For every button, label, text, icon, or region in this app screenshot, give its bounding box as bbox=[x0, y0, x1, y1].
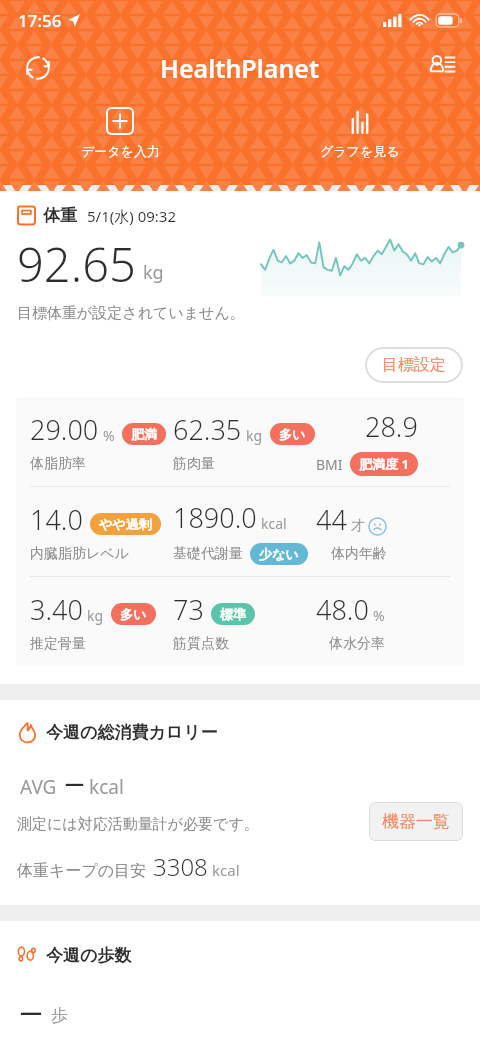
staticText: — bbox=[20, 996, 43, 1026]
staticText: 体重キープの目安 bbox=[17, 861, 147, 881]
staticText: 29.00 bbox=[30, 411, 99, 448]
staticText: 肥満度 1 bbox=[359, 455, 409, 473]
staticText: 目標設定 bbox=[382, 355, 446, 375]
staticText: kcal bbox=[261, 514, 287, 533]
staticText: 内臓脂肪レベル bbox=[30, 545, 129, 563]
staticText: 48.0 bbox=[316, 591, 369, 628]
staticText: 肥満 bbox=[131, 426, 157, 442]
staticText: kg bbox=[143, 260, 164, 285]
staticText: 今週の歩数 bbox=[46, 945, 132, 966]
staticText: 測定には対応活動量計が必要です。 bbox=[17, 815, 259, 834]
staticText: 92.65 bbox=[17, 232, 136, 296]
staticText: 才 bbox=[351, 517, 365, 535]
staticText: 体重 bbox=[43, 205, 77, 226]
staticText: 筋肉量 bbox=[173, 455, 215, 473]
staticText: 17:56 bbox=[18, 9, 62, 32]
staticText: 推定骨量 bbox=[30, 635, 86, 653]
button[interactable]: Refresh bbox=[16, 46, 60, 90]
staticText: % bbox=[103, 426, 115, 445]
staticText: 多い bbox=[279, 426, 306, 442]
staticText: kg bbox=[87, 606, 104, 625]
staticText: 5/1(水) 09:32 bbox=[87, 206, 176, 226]
staticText: 体内年齢 bbox=[331, 545, 387, 563]
staticText: BMI bbox=[316, 455, 343, 474]
staticText: 3308 bbox=[153, 850, 208, 883]
staticText: kcal bbox=[89, 774, 124, 800]
staticText: 体水分率 bbox=[329, 635, 385, 653]
staticText: HealthPlanet bbox=[160, 51, 320, 85]
staticText: % bbox=[373, 606, 385, 625]
staticText: 73 bbox=[173, 591, 204, 628]
staticText: 機器一覧 bbox=[382, 811, 450, 832]
staticText: 目標体重が設定されていません。 bbox=[17, 304, 245, 323]
staticText: 14.0 bbox=[30, 501, 83, 538]
staticText: やや過剰 bbox=[99, 516, 152, 532]
staticText: — bbox=[65, 770, 85, 796]
staticText: 62.35 bbox=[173, 411, 242, 448]
button[interactable]: 目標設定 bbox=[365, 347, 463, 383]
button[interactable]: データを入力 bbox=[0, 104, 240, 163]
staticText: AVG bbox=[20, 774, 57, 800]
staticText: 標準 bbox=[220, 606, 246, 622]
staticText: 歩 bbox=[51, 1005, 68, 1026]
staticText: 28.9 bbox=[365, 408, 418, 445]
staticText: 今週の総消費カロリー bbox=[46, 722, 218, 743]
staticText: 基礎代謝量 bbox=[173, 545, 243, 563]
button[interactable]: 機器一覧 bbox=[369, 802, 463, 841]
staticText: グラフを見る bbox=[320, 143, 400, 159]
staticText: 少ない bbox=[259, 546, 299, 562]
staticText: 筋質点数 bbox=[173, 635, 229, 653]
staticText: データを入力 bbox=[81, 143, 160, 159]
staticText: kg bbox=[246, 426, 263, 445]
button[interactable]: グラフを見る bbox=[240, 104, 480, 163]
staticText: 多い bbox=[120, 606, 147, 622]
button[interactable]: Profile bbox=[420, 46, 464, 90]
staticText: 体脂肪率 bbox=[30, 455, 86, 473]
staticText: 3.40 bbox=[30, 591, 83, 628]
staticText: 44 bbox=[316, 501, 347, 538]
staticText: 1890.0 bbox=[173, 499, 257, 536]
staticText: kcal bbox=[212, 860, 240, 880]
